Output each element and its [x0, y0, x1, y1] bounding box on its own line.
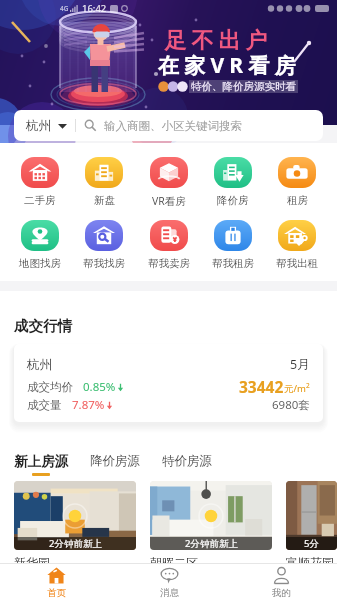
- staticText: 5月: [290, 356, 310, 373]
- staticText: 降价房: [217, 194, 249, 207]
- button[interactable]: 我的: [225, 564, 337, 600]
- button[interactable]: 帮我租房: [207, 220, 259, 270]
- staticText: 成交量: [27, 398, 62, 412]
- staticText: 成交均价: [27, 380, 73, 394]
- staticText: 2分钟前新上: [49, 537, 102, 550]
- staticText: 2分钟前新上: [185, 537, 238, 550]
- staticText: 新华园: [14, 555, 50, 570]
- staticText: 7.87%: [72, 397, 105, 413]
- staticText: 2: [306, 381, 310, 390]
- staticText: 帮我找房: [83, 257, 125, 270]
- button[interactable]: 首页: [0, 564, 113, 600]
- staticText: 首页: [47, 587, 66, 599]
- staticText: 在家VR看房: [158, 51, 301, 80]
- button[interactable]: 新盘: [78, 157, 130, 207]
- staticText: 输入商圈、小区关键词搜索: [104, 119, 242, 133]
- staticText: 新盘: [94, 194, 115, 207]
- button[interactable]: 降价房: [207, 157, 259, 207]
- staticText: 帮我卖房: [148, 257, 190, 270]
- staticText: 4G: [60, 4, 69, 13]
- staticText: 租房: [287, 194, 308, 207]
- staticText: 元/m: [284, 382, 306, 395]
- staticText: 特价、降价房源实时看: [191, 80, 296, 93]
- button[interactable]: 降价房源: [90, 453, 140, 469]
- button[interactable]: 5分: [286, 481, 337, 550]
- staticText: 朝晖二区: [150, 555, 198, 570]
- button[interactable]: 二手房: [14, 157, 66, 207]
- staticText: 新上房源: [14, 453, 68, 470]
- button[interactable]: 帮我找房: [78, 220, 130, 270]
- staticText: 5分: [304, 537, 319, 550]
- staticText: 帮我出租: [276, 257, 318, 270]
- button[interactable]: 杭州: [14, 110, 323, 141]
- button[interactable]: 消息: [113, 564, 225, 600]
- staticText: 富顺花园: [286, 555, 334, 570]
- staticText: 二手房: [24, 194, 56, 207]
- staticText: 33442: [239, 376, 284, 397]
- button[interactable]: 新上房源: [14, 453, 68, 476]
- staticText: 成交行情: [14, 317, 72, 335]
- staticText: 消息: [160, 587, 179, 599]
- staticText: 16:42: [82, 2, 107, 15]
- button[interactable]: 地图找房: [14, 220, 66, 270]
- button[interactable]: 帮我卖房: [143, 220, 195, 270]
- button[interactable]: 租房: [271, 157, 323, 207]
- staticText: 杭州: [26, 118, 51, 134]
- staticText: 地图找房: [19, 257, 61, 270]
- staticText: VR看房: [152, 194, 186, 208]
- staticText: 杭州: [27, 357, 52, 373]
- staticText: 0.85%: [83, 379, 116, 395]
- staticText: 6980套: [272, 397, 310, 413]
- staticText: 我的: [272, 587, 291, 599]
- button[interactable]: 特价房源: [162, 453, 212, 469]
- button[interactable]: 帮我出租: [271, 220, 323, 270]
- button[interactable]: VR看房: [143, 157, 195, 208]
- button[interactable]: 2分钟前新上: [150, 481, 272, 550]
- staticText: 足不出户: [162, 27, 270, 55]
- staticText: 帮我租房: [212, 257, 254, 270]
- button[interactable]: 2分钟前新上: [14, 481, 136, 550]
- button[interactable]: 杭州: [14, 344, 323, 422]
